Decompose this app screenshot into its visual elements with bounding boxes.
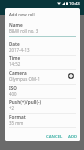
staticText: 10:43 [69,1,80,7]
staticText: Time [9,55,21,61]
button[interactable] [5,82,80,99]
staticText: Olympus OM-1 [9,76,40,82]
staticText: Date [9,41,20,47]
staticText: Format [9,114,26,120]
button[interactable]: Add camera [68,73,74,79]
staticText: 14:52 [9,61,21,67]
staticText: 35 mm [9,120,24,126]
button[interactable] [5,97,80,114]
button[interactable] [5,67,80,84]
button[interactable] [5,39,80,56]
button[interactable]: ADD [67,133,78,141]
button[interactable] [5,20,80,38]
staticText: Add new roll [9,11,35,17]
staticText: ADD [68,134,78,140]
staticText: +2 [9,105,15,111]
staticText: Camera [9,70,27,76]
staticText: 2017-4-13 [9,47,30,53]
staticText: Name [9,22,23,28]
staticText: 400 [9,91,17,97]
button[interactable] [5,112,80,129]
button[interactable] [5,53,80,70]
staticText: Push(+)/pull(-) [9,99,41,105]
staticText: CANCEL [46,134,63,140]
staticText: B&W roll no. 3 [9,28,39,34]
button[interactable]: CANCEL [45,133,63,141]
staticText: ISO [9,85,17,91]
